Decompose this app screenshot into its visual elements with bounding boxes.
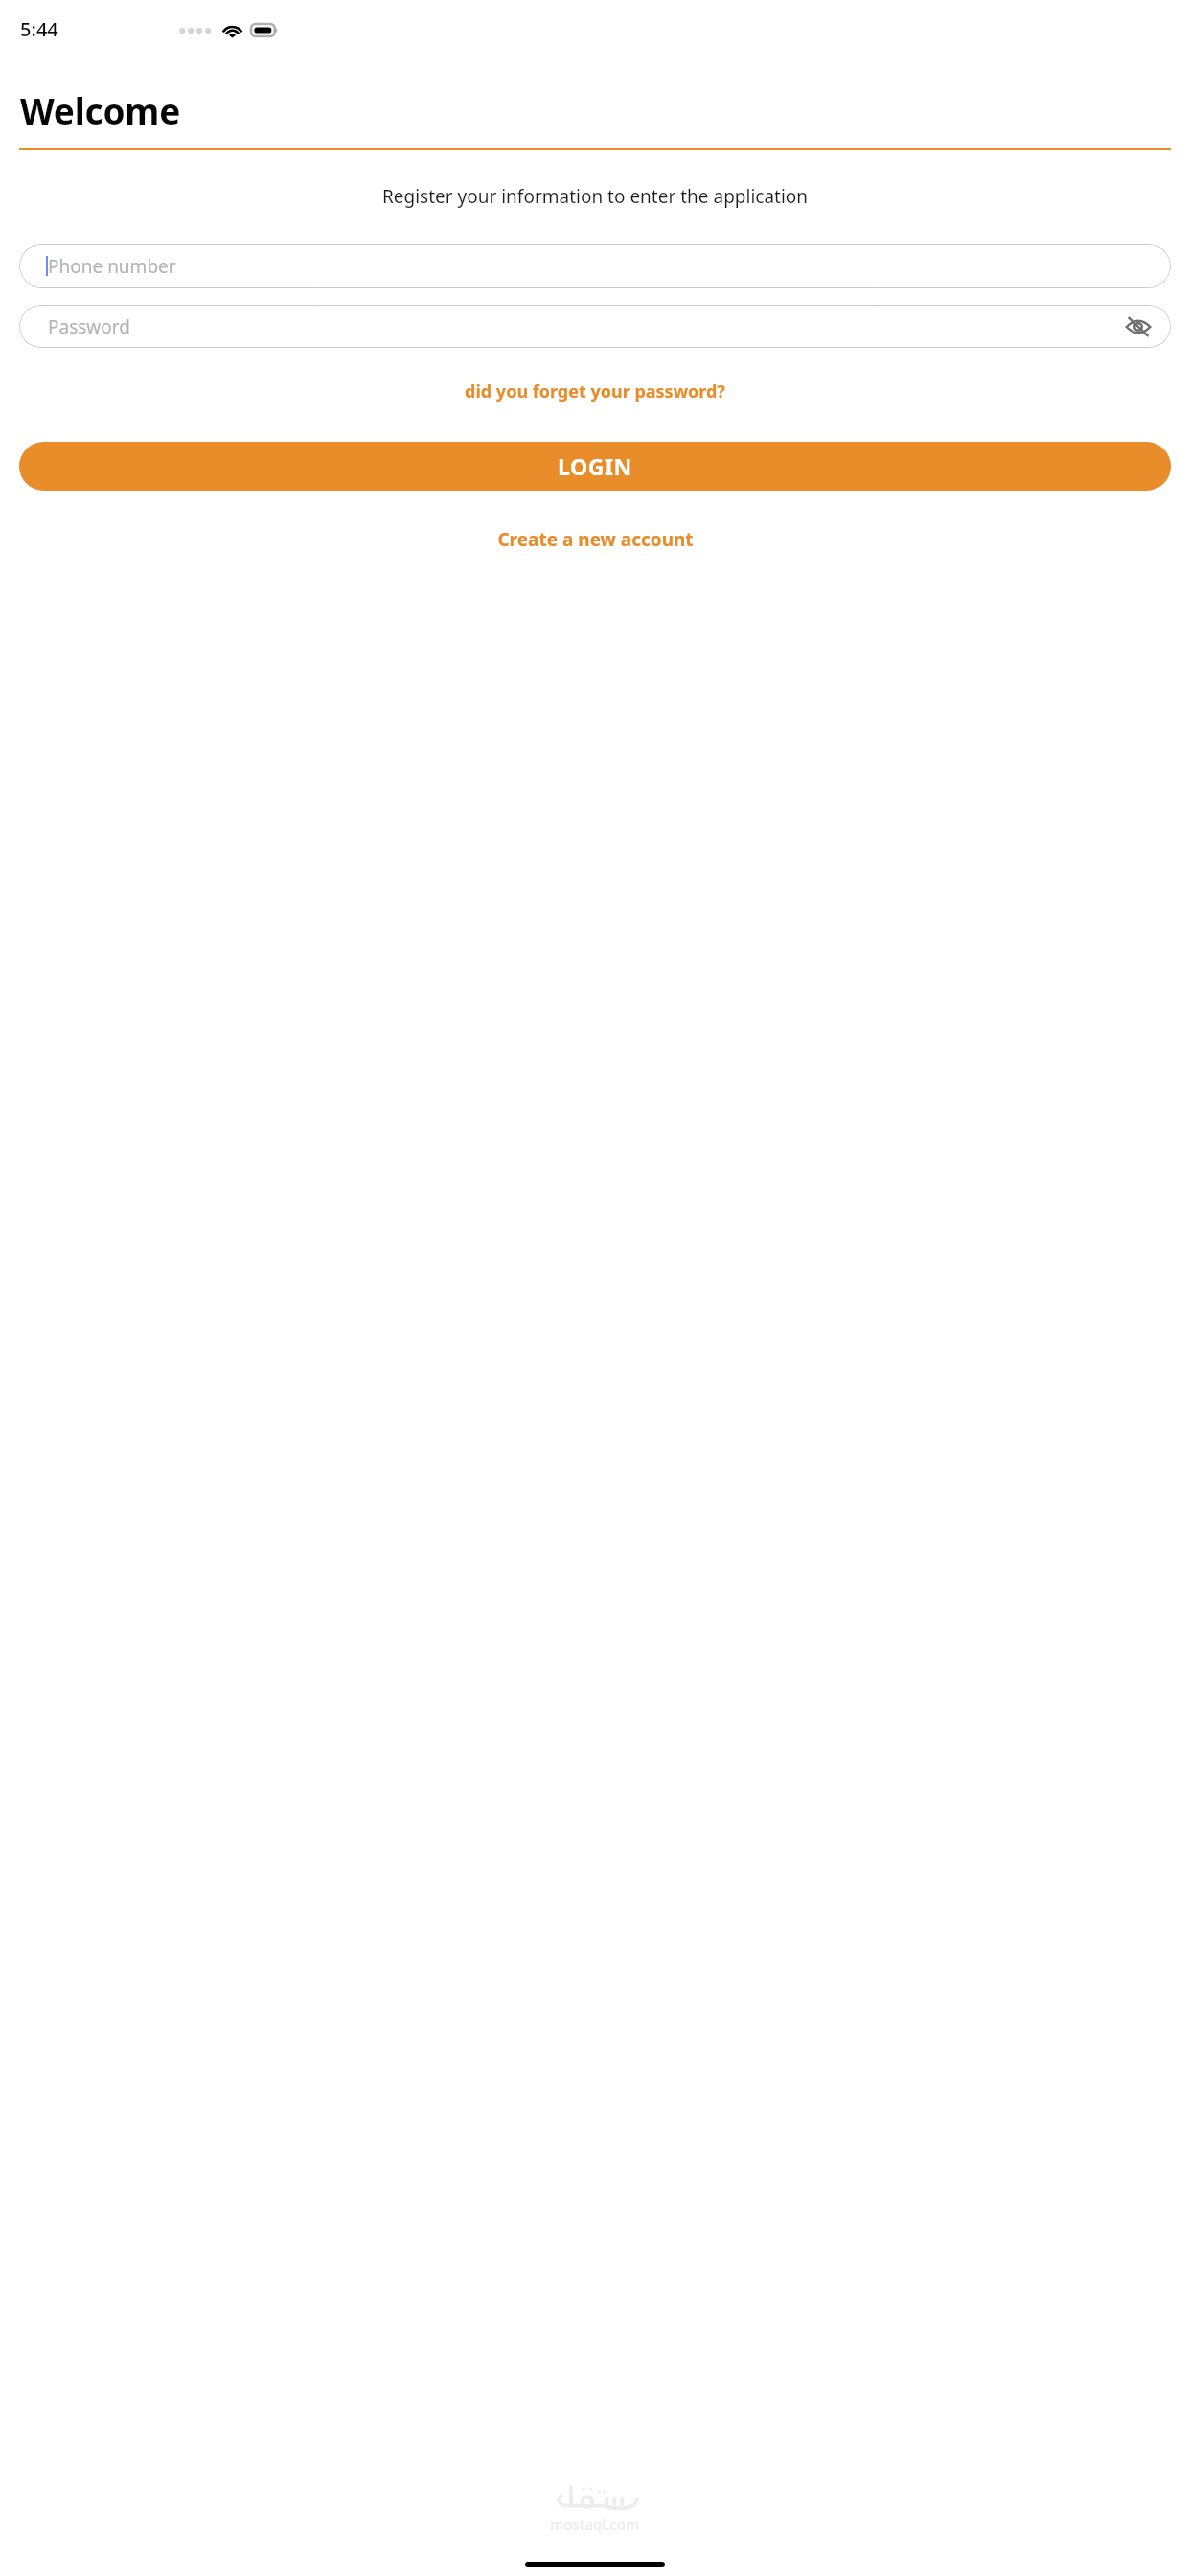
staticText: 5:44 [20, 16, 58, 42]
staticText: Create a new account [497, 527, 694, 552]
button[interactable]: Create a new account [0, 527, 1190, 552]
staticText: Phone number [48, 254, 176, 279]
staticText: Welcome [20, 86, 181, 134]
button[interactable]: did you forget your password? [0, 379, 1190, 403]
staticText: LOGIN [558, 451, 632, 481]
button[interactable]: LOGIN [19, 442, 1171, 491]
button[interactable]: Password [19, 305, 1171, 348]
staticText: mostaql.com [550, 2515, 640, 2534]
button[interactable]: Show password [1117, 306, 1159, 348]
staticText: Password [48, 314, 1117, 339]
staticText: did you forget your password? [465, 379, 725, 403]
staticText: Register your information to enter the a… [0, 184, 1190, 209]
button[interactable]: Phone number [19, 244, 1171, 287]
